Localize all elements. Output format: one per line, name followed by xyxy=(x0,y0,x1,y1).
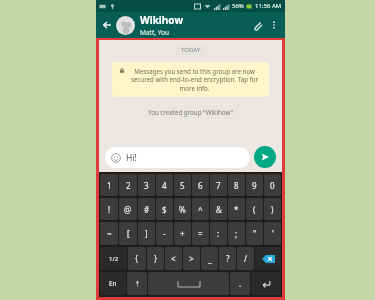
button[interactable]: @ xyxy=(119,198,137,220)
button[interactable]: < xyxy=(165,247,182,270)
staticText: 11:56 AM xyxy=(255,2,282,10)
button[interactable]: & xyxy=(210,198,227,220)
button[interactable]: % xyxy=(174,198,191,220)
button[interactable]: More options xyxy=(267,18,281,32)
button[interactable]: Attach xyxy=(249,17,265,33)
staticText: - xyxy=(163,228,166,239)
staticText: $ xyxy=(162,204,167,215)
staticText: You created group "Wikihow" xyxy=(148,108,234,116)
button[interactable]: Messages you send to this group are now … xyxy=(112,62,269,97)
staticText: Matt, You xyxy=(140,28,169,37)
staticText: 5 xyxy=(180,180,185,191)
staticText: * xyxy=(234,204,239,215)
staticText: > xyxy=(189,253,194,264)
button[interactable]: + xyxy=(174,222,191,245)
staticText: . xyxy=(239,278,242,289)
button[interactable]: * xyxy=(228,198,245,220)
staticText: 0 xyxy=(270,180,275,191)
staticText: = xyxy=(198,228,203,239)
button[interactable]: Group photo xyxy=(116,16,135,35)
button[interactable]: . xyxy=(230,272,250,295)
staticText: Hi! xyxy=(126,152,137,164)
staticText: } xyxy=(154,253,158,264)
staticText: # xyxy=(144,204,150,215)
button[interactable]: / xyxy=(237,247,254,270)
button[interactable]: ^ xyxy=(192,198,209,220)
staticText: 9 xyxy=(252,180,257,191)
button[interactable]: Hi! xyxy=(105,147,250,168)
button[interactable]: ] xyxy=(138,222,155,245)
staticText: % xyxy=(179,204,186,215)
button[interactable]: Backspace xyxy=(255,247,281,270)
button[interactable]: Wikihow xyxy=(140,13,249,37)
button[interactable]: 5 xyxy=(174,174,191,196)
staticText: @ xyxy=(124,204,132,215)
button[interactable]: 2 xyxy=(119,174,137,196)
staticText: : xyxy=(217,228,220,239)
staticText: / xyxy=(244,253,247,264)
button[interactable]: Voice input xyxy=(127,272,147,295)
button[interactable]: # xyxy=(138,198,155,220)
button[interactable]: - xyxy=(156,222,173,245)
staticText: 8 xyxy=(234,180,239,191)
staticText: 1/2 xyxy=(109,255,119,263)
staticText: ! xyxy=(108,204,111,215)
staticText: ] xyxy=(145,228,148,239)
button[interactable]: = xyxy=(192,222,209,245)
staticText: ( xyxy=(253,204,256,215)
staticText: { xyxy=(135,253,139,264)
staticText: 56% xyxy=(232,2,244,10)
staticText: ? xyxy=(226,253,230,264)
button[interactable]: $ xyxy=(156,198,173,220)
button[interactable]: ' xyxy=(264,222,281,245)
button[interactable]: ! xyxy=(100,198,118,220)
staticText: 2 xyxy=(126,180,131,191)
staticText: ' xyxy=(272,228,274,239)
button[interactable]: 9 xyxy=(246,174,263,196)
staticText: En xyxy=(109,279,117,288)
button[interactable]: Send xyxy=(254,146,276,168)
staticText: 7 xyxy=(216,180,221,191)
button[interactable]: Back xyxy=(100,18,114,32)
staticText: 6 xyxy=(198,180,203,191)
button[interactable]: En xyxy=(100,272,126,295)
button[interactable]: [ xyxy=(119,222,137,245)
button[interactable]: 0 xyxy=(264,174,281,196)
staticText: 4 xyxy=(162,180,167,191)
button[interactable]: 7 xyxy=(210,174,227,196)
staticText: ) xyxy=(271,204,274,215)
staticText: Wikihow xyxy=(140,13,183,27)
button[interactable]: 6 xyxy=(192,174,209,196)
staticText: TODAY xyxy=(181,46,201,54)
button[interactable]: 3 xyxy=(138,174,155,196)
button[interactable]: Space xyxy=(148,272,229,295)
button[interactable]: : xyxy=(210,222,227,245)
staticText: 3 xyxy=(144,180,149,191)
staticText: Messages you send to this group are now … xyxy=(127,67,262,92)
button[interactable]: ? xyxy=(219,247,236,270)
staticText: < xyxy=(171,253,176,264)
button[interactable]: _ xyxy=(201,247,218,270)
staticText: [ xyxy=(127,228,130,239)
staticText: " xyxy=(253,228,257,239)
button[interactable]: Enter xyxy=(251,272,281,295)
staticText: ^ xyxy=(198,204,203,215)
button[interactable]: ~ xyxy=(100,222,118,245)
staticText: 1 xyxy=(107,180,112,191)
button[interactable]: " xyxy=(246,222,263,245)
button[interactable]: } xyxy=(147,247,164,270)
button[interactable]: 1 xyxy=(100,174,118,196)
staticText: _ xyxy=(208,253,212,264)
button[interactable]: > xyxy=(183,247,200,270)
button[interactable]: 1/2 xyxy=(100,247,127,270)
staticText: & xyxy=(216,204,222,215)
button[interactable]: 8 xyxy=(228,174,245,196)
button[interactable]: ) xyxy=(264,198,281,220)
button[interactable]: 4 xyxy=(156,174,173,196)
staticText: ~ xyxy=(107,228,112,239)
button[interactable]: ; xyxy=(228,222,245,245)
staticText: + xyxy=(180,228,185,239)
button[interactable]: { xyxy=(128,247,146,270)
button[interactable]: ( xyxy=(246,198,263,220)
staticText: ; xyxy=(235,228,238,239)
